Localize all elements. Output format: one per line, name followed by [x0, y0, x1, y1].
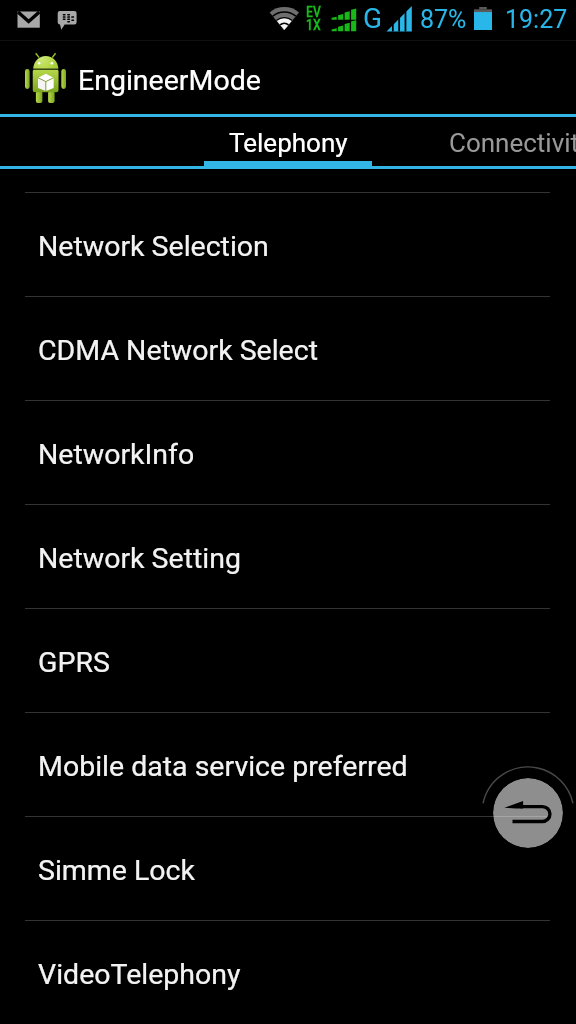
- button[interactable]: VideoTelephony: [0, 920, 576, 1024]
- staticText: EV: [306, 4, 321, 20]
- staticText: Mobile data service preferred: [38, 750, 408, 783]
- staticText: 1X: [306, 17, 321, 33]
- button[interactable]: Connectivity: [380, 117, 576, 166]
- staticText: CDMA Network Select: [38, 334, 318, 367]
- staticText: 19:27: [505, 5, 568, 34]
- staticText: Connectivity: [449, 128, 576, 158]
- staticText: EngineerMode: [78, 64, 261, 97]
- staticText: Simme Lock: [38, 854, 195, 887]
- button[interactable]: Telephony: [204, 117, 372, 166]
- button[interactable]: Simme Lock: [0, 816, 576, 920]
- staticText: Telephony: [229, 128, 348, 158]
- staticText: Network Selection: [38, 230, 269, 263]
- staticText: VideoTelephony: [38, 958, 241, 991]
- button[interactable]: GPRS: [0, 608, 576, 712]
- staticText: GPRS: [38, 646, 110, 679]
- button[interactable]: CDMA Network Select: [0, 296, 576, 400]
- staticText: 87%: [420, 5, 467, 34]
- button[interactable]: NetworkInfo: [0, 400, 576, 504]
- staticText: G: [363, 2, 383, 35]
- button[interactable]: Network Setting: [0, 504, 576, 608]
- staticText: NetworkInfo: [38, 438, 195, 471]
- button[interactable]: Network Selection: [0, 192, 576, 296]
- button[interactable]: Mobile data service preferred: [0, 712, 576, 816]
- button[interactable]: Back: [493, 778, 563, 848]
- staticText: Network Setting: [38, 542, 241, 575]
